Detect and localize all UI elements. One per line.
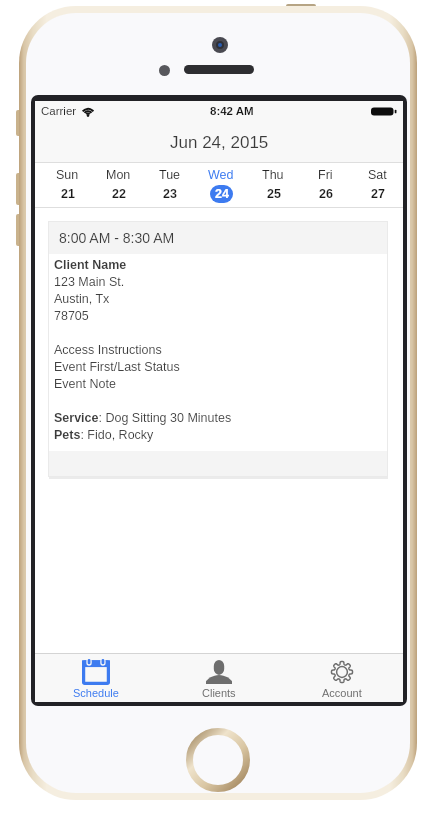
staticText: Sun bbox=[56, 168, 79, 182]
staticText: 22 bbox=[112, 187, 126, 201]
staticText: Schedule bbox=[73, 687, 119, 699]
button[interactable]: Mon bbox=[93, 163, 144, 207]
staticText: 25 bbox=[267, 187, 281, 201]
staticText: 21 bbox=[61, 187, 75, 201]
staticText: Account bbox=[322, 687, 362, 699]
staticText: Tue bbox=[159, 168, 181, 182]
staticText: Thu bbox=[262, 168, 284, 182]
staticText: 26 bbox=[319, 187, 333, 201]
button[interactable]: 8:00 AM - 8:30 AM bbox=[48, 221, 388, 477]
button[interactable]: Fri bbox=[299, 163, 351, 207]
button[interactable]: Sun bbox=[42, 163, 93, 207]
button[interactable]: Thu bbox=[247, 163, 299, 207]
button[interactable]: Sat bbox=[351, 163, 403, 207]
staticText: Sat bbox=[368, 168, 387, 182]
staticText: Mon bbox=[106, 168, 131, 182]
button[interactable]: Schedule bbox=[35, 654, 157, 702]
staticText: Fri bbox=[318, 168, 333, 182]
button[interactable]: Tue bbox=[144, 163, 195, 207]
staticText: 23 bbox=[163, 187, 177, 201]
staticText: Carrier bbox=[41, 105, 77, 118]
staticText: Clients bbox=[202, 687, 236, 699]
staticText: 27 bbox=[371, 187, 385, 201]
staticText: 8:42 AM bbox=[210, 105, 254, 118]
button[interactable]: Wed bbox=[195, 163, 247, 207]
staticText: Jun 24, 2015 bbox=[170, 133, 269, 152]
button[interactable]: Clients bbox=[157, 654, 280, 702]
staticText: 8:00 AM - 8:30 AM bbox=[59, 230, 175, 246]
staticText: Wed bbox=[208, 168, 234, 182]
staticText: 24 bbox=[215, 187, 229, 201]
staticText: Client Name 123 Main St. Austin, Tx 7870… bbox=[54, 258, 232, 442]
button[interactable]: Account bbox=[280, 654, 403, 702]
